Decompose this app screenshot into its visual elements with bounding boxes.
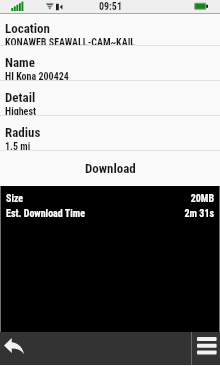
staticText: HI Kona 200424 bbox=[5, 71, 69, 80]
staticText: KONAWEB SEAWALL-CAM~KAIL bbox=[5, 37, 136, 45]
button[interactable]: Download bbox=[0, 151, 220, 186]
button[interactable]: Location bbox=[0, 14, 220, 45]
staticText: Size bbox=[6, 193, 24, 205]
staticText: Radius bbox=[5, 125, 41, 140]
button[interactable]: Back bbox=[0, 332, 191, 365]
button[interactable]: Name bbox=[0, 46, 220, 80]
staticText: 2m 31s bbox=[184, 208, 214, 220]
staticText: 1.5 mi bbox=[5, 141, 31, 150]
staticText: Name bbox=[5, 55, 35, 70]
button[interactable]: Detail bbox=[0, 81, 220, 115]
staticText: 20MB bbox=[190, 193, 214, 205]
button[interactable]: Menu bbox=[192, 332, 220, 365]
staticText: Location bbox=[5, 21, 50, 36]
staticText: Highest bbox=[5, 106, 37, 115]
staticText: Est. Download Time bbox=[6, 208, 85, 220]
staticText: 09:51 bbox=[99, 1, 122, 13]
staticText: Detail bbox=[5, 90, 36, 105]
staticText: Download bbox=[85, 161, 136, 176]
button[interactable]: Radius bbox=[0, 116, 220, 150]
